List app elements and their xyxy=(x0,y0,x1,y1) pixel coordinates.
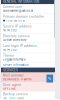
staticText: corp.sys.local xyxy=(6,19,25,22)
staticText: OK 28% used xyxy=(3,97,24,100)
staticText: DEGRADED 4 alerts xyxy=(3,78,31,81)
staticText: Current user xyxy=(3,5,22,9)
staticText: Mail gateway xyxy=(3,74,24,77)
staticText: Legacy interface xyxy=(3,58,26,61)
staticText: Server information xyxy=(3,63,29,67)
button[interactable]: Server information xyxy=(1,63,55,68)
staticText: SERVICES xyxy=(3,68,18,72)
staticText: Backup service xyxy=(3,92,28,96)
staticText: Source IP address xyxy=(3,25,32,28)
staticText: Directory service xyxy=(3,34,30,38)
staticText: OFFLINE xyxy=(3,87,16,90)
staticText: Sync agent xyxy=(3,83,21,87)
staticText: Last login IP address xyxy=(3,44,37,48)
staticText: Active Directory xyxy=(3,38,26,42)
staticText: 10.14.7.22 xyxy=(3,48,17,51)
staticText: ✎ xyxy=(48,76,52,81)
staticText: GENERAL INFORMATION xyxy=(3,0,39,3)
staticText: 10.14.7.22 xyxy=(3,29,17,32)
staticText: Primary domain controller xyxy=(3,15,44,18)
staticText: superadmin@sys.local xyxy=(3,9,33,12)
staticText: Theme xyxy=(3,54,14,57)
button[interactable]: Edit xyxy=(46,75,53,83)
